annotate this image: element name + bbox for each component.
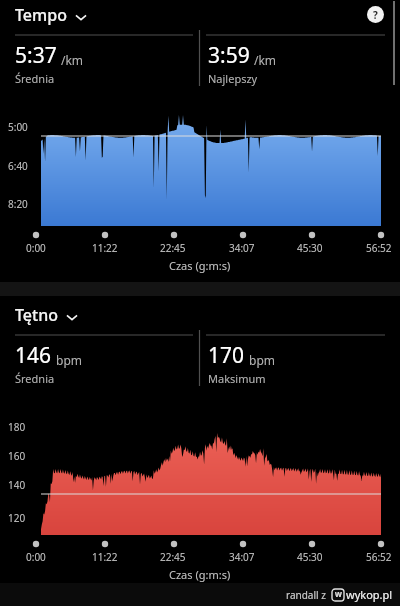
button[interactable]: 5:37: [15, 41, 185, 86]
button[interactable]: 3:59: [208, 41, 378, 86]
button[interactable]: Tętno: [15, 304, 78, 326]
staticText: 22:45: [160, 550, 186, 564]
staticText: Tempo: [15, 4, 67, 26]
staticText: 11:22: [92, 241, 118, 255]
button[interactable]: 146: [15, 341, 185, 386]
staticText: 140: [8, 478, 26, 492]
staticText: 56:52: [366, 550, 392, 564]
staticText: 180: [8, 420, 26, 434]
staticText: /km: [61, 52, 84, 68]
staticText: 0:00: [26, 550, 46, 564]
staticText: 160: [8, 449, 26, 463]
staticText: 22:45: [160, 241, 186, 255]
button[interactable]: 170: [208, 341, 378, 386]
staticText: 45:30: [297, 550, 323, 564]
staticText: randall z: [286, 588, 326, 602]
staticText: /km: [254, 52, 277, 68]
staticText: ?: [373, 8, 378, 22]
staticText: Średnia: [15, 371, 55, 386]
staticText: W: [335, 590, 342, 600]
staticText: Średnia: [15, 71, 55, 86]
staticText: 170: [208, 341, 245, 370]
staticText: 146: [15, 341, 52, 370]
staticText: bpm: [249, 352, 275, 368]
staticText: 6:40: [8, 159, 28, 173]
staticText: 5:37: [15, 41, 57, 70]
staticText: 120: [8, 511, 26, 525]
staticText: Czas (g:m:s): [169, 258, 231, 273]
staticText: bpm: [56, 352, 82, 368]
staticText: Maksimum: [208, 371, 266, 386]
staticText: wykop.pl: [346, 587, 393, 602]
button[interactable]: Help: [367, 6, 384, 23]
staticText: 11:22: [92, 550, 118, 564]
staticText: 5:00: [8, 120, 28, 134]
staticText: Tętno: [15, 304, 58, 326]
staticText: 0:00: [26, 241, 46, 255]
staticText: 34:07: [229, 241, 255, 255]
staticText: 8:20: [8, 197, 28, 211]
staticText: 56:52: [366, 241, 392, 255]
button[interactable]: Tempo: [15, 4, 87, 26]
staticText: 45:30: [297, 241, 323, 255]
staticText: Najlepszy: [208, 71, 258, 86]
staticText: Czas (g:m:s): [169, 567, 231, 582]
staticText: 3:59: [208, 41, 250, 70]
staticText: 34:07: [229, 550, 255, 564]
